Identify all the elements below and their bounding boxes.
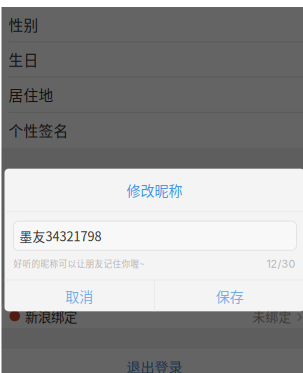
staticText: 居住地 bbox=[8, 84, 53, 105]
button[interactable]: 生日 bbox=[1, 42, 303, 77]
button[interactable]: 保存 bbox=[155, 280, 303, 311]
button[interactable]: 新浪绑定 bbox=[1, 304, 303, 328]
staticText: 个性签名 bbox=[8, 120, 68, 141]
staticText: 生日 bbox=[8, 49, 38, 70]
button[interactable]: 取消 bbox=[4, 280, 154, 311]
staticText: 好听的昵称可以让朋友记住你喔~ bbox=[13, 257, 144, 270]
staticText: 性别 bbox=[8, 14, 38, 35]
button[interactable]: 个性签名 bbox=[1, 113, 303, 148]
button[interactable]: 退出登录 bbox=[1, 349, 303, 373]
staticText: 新浪绑定 bbox=[25, 306, 77, 326]
staticText: 退出登录 bbox=[126, 356, 182, 373]
button[interactable]: 居住地 bbox=[1, 77, 303, 113]
button[interactable]: 性别 bbox=[1, 7, 303, 42]
staticText: 未绑定 bbox=[252, 307, 291, 325]
staticText: › bbox=[296, 306, 302, 326]
staticText: 12/30 bbox=[266, 257, 295, 270]
staticText: 修改昵称 bbox=[126, 180, 182, 200]
staticText: 取消 bbox=[65, 286, 93, 306]
staticText: 保存 bbox=[216, 286, 244, 306]
staticText: 墨友34321798 bbox=[19, 226, 101, 245]
